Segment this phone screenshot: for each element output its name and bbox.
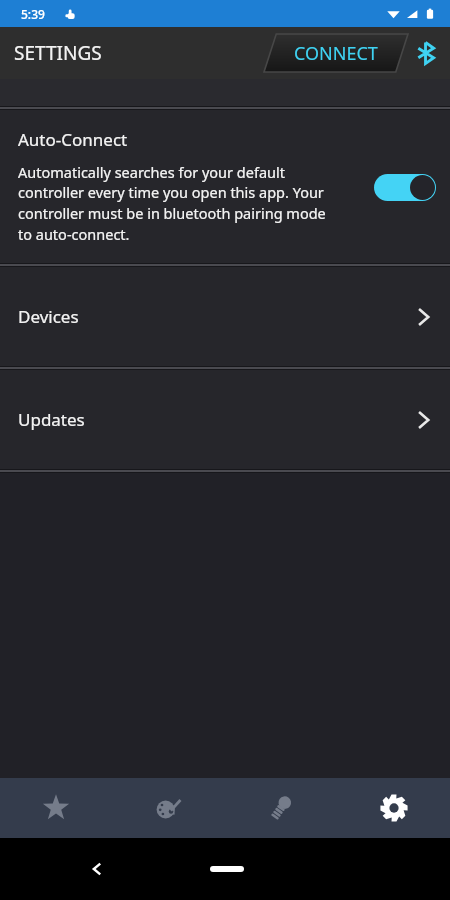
staticText: Updates [18, 408, 85, 431]
button[interactable]: Devices [0, 267, 450, 366]
staticText: Automatically searches for your default … [18, 162, 333, 245]
button[interactable]: Settings [337, 778, 450, 838]
button[interactable]: Favorites [0, 778, 112, 838]
staticText: 5:39 [21, 6, 45, 22]
button[interactable]: CONNECT [264, 34, 408, 72]
button[interactable]: Updates [0, 370, 450, 469]
staticText: SETTINGS [14, 40, 102, 66]
button[interactable]: Home [210, 866, 244, 872]
button[interactable]: Microphone [224, 778, 337, 838]
staticText: Devices [18, 305, 79, 328]
staticText: CONNECT [294, 41, 378, 66]
button[interactable]: Auto-Connect toggle [374, 172, 436, 202]
button[interactable]: Bluetooth [414, 41, 438, 65]
staticText: Auto-Connect [18, 128, 128, 151]
button[interactable]: Back [88, 860, 106, 878]
button[interactable]: Auto-Connect [0, 110, 450, 263]
button[interactable]: Themes [112, 778, 224, 838]
